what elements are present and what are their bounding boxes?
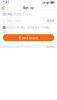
staticText: 9:41 [3, 1, 10, 4]
staticText: Enter code [7, 19, 22, 23]
button[interactable]: Send [47, 19, 54, 23]
staticText: Send [47, 19, 54, 23]
staticText: Agree to the Terms and Privacy [7, 26, 49, 29]
button[interactable]: Continue [3, 34, 54, 41]
staticText: Terms [46, 45, 54, 48]
button[interactable]: Terms [46, 45, 54, 48]
staticText: Continue [19, 35, 38, 40]
staticText: Already have an account? [3, 45, 36, 48]
button[interactable]: Back [0, 5, 7, 11]
staticText: @example.com [13, 12, 31, 16]
staticText: m [7, 12, 9, 16]
button[interactable]: m [3, 11, 54, 18]
staticText: Sign up [23, 6, 34, 10]
button[interactable]: Agree to the Terms and Privacy [3, 24, 54, 31]
